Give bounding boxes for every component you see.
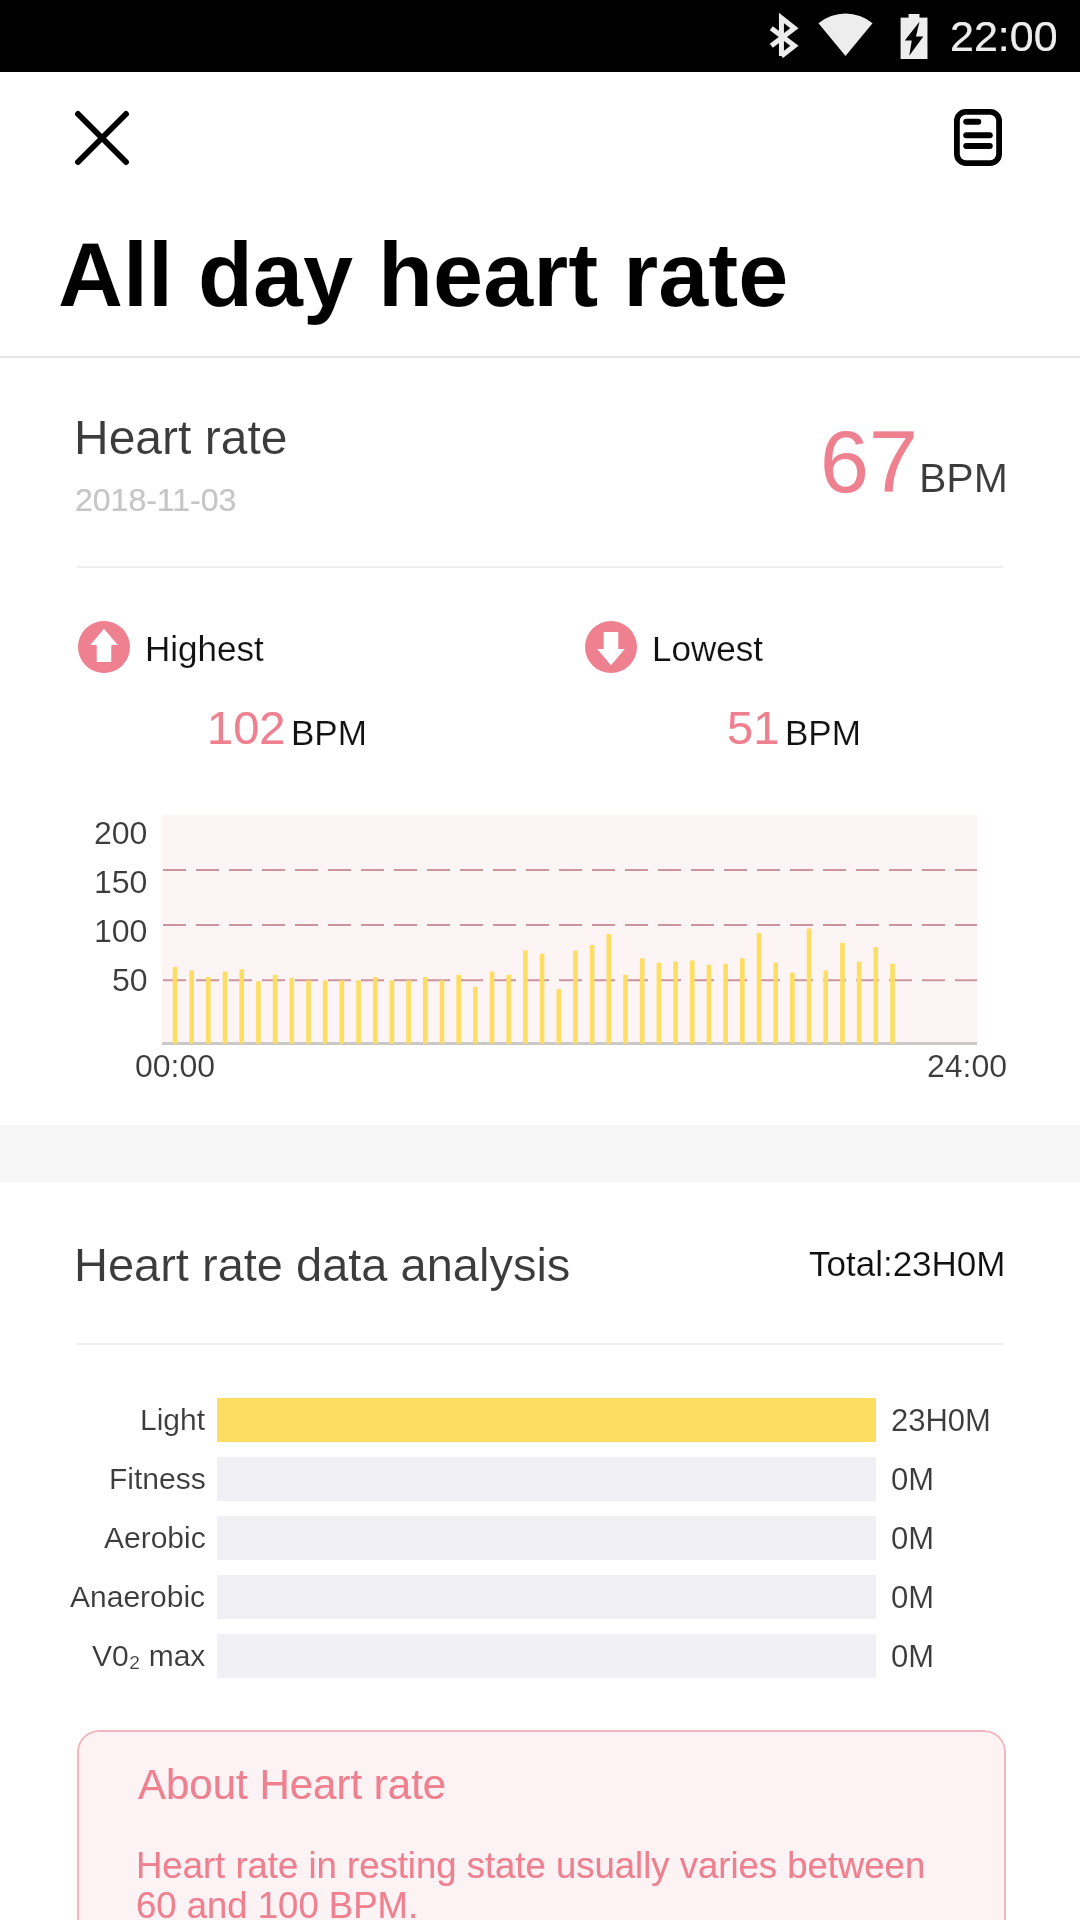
button[interactable]: Close: [54, 90, 150, 186]
staticText: 23H0M: [891, 1403, 991, 1438]
staticText: 50: [112, 962, 148, 998]
staticText: 67: [820, 412, 918, 510]
staticText: 24:00: [927, 1048, 1008, 1084]
staticText: BPM: [919, 455, 1008, 501]
staticText: Total:23H0M: [809, 1244, 1006, 1283]
staticText: Lowest: [652, 629, 763, 668]
staticText: All day heart rate: [58, 225, 789, 326]
staticText: V0₂ max: [92, 1639, 206, 1673]
button[interactable]: Records: [930, 89, 1026, 185]
staticText: Heart rate: [74, 411, 288, 465]
staticText: BPM: [291, 713, 367, 752]
staticText: Highest: [145, 629, 264, 668]
staticText: Heart rate in resting state usually vari…: [136, 1845, 948, 1920]
staticText: 00:00: [135, 1048, 216, 1084]
staticText: Aerobic: [104, 1521, 206, 1555]
button[interactable]: About Heart rate: [77, 1730, 1006, 1920]
staticText: 0M: [891, 1639, 935, 1674]
staticText: Anaerobic: [70, 1580, 206, 1614]
staticText: 0M: [891, 1580, 935, 1615]
staticText: 100: [94, 913, 148, 949]
staticText: Light: [140, 1403, 206, 1437]
staticText: Fitness: [109, 1462, 206, 1496]
staticText: 150: [94, 864, 148, 900]
staticText: 2018-11-03: [75, 482, 237, 518]
staticText: 0M: [891, 1521, 935, 1556]
staticText: 200: [94, 815, 148, 851]
staticText: About Heart rate: [138, 1761, 447, 1808]
staticText: 22:00: [950, 12, 1058, 60]
staticText: 51: [727, 701, 780, 754]
staticText: Heart rate data analysis: [74, 1238, 571, 1291]
staticText: 102: [207, 701, 286, 754]
staticText: BPM: [785, 713, 861, 752]
staticText: 0M: [891, 1462, 935, 1497]
